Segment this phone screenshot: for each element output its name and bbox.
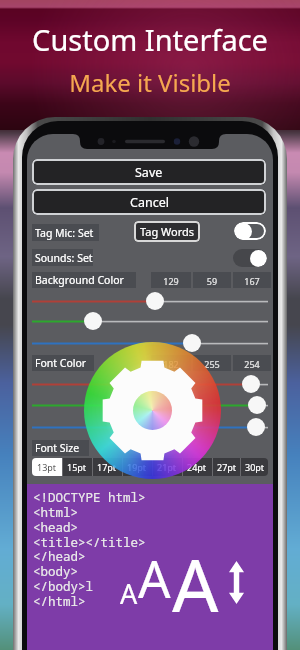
staticText: 167 [233,275,271,287]
button[interactable]: 24pt [182,458,212,476]
button[interactable]: 21pt [152,458,182,476]
staticText: Tag Mic: Set [35,226,94,240]
staticText: 59 [193,275,231,287]
staticText: Save [135,164,163,181]
button[interactable]: Slider handle [242,375,260,393]
staticText: 19pt [127,461,147,473]
staticText: 15pt [67,461,87,473]
button[interactable]: Color picker [84,342,221,479]
button[interactable]: Font Size [32,440,89,456]
staticText: 13pt [37,461,57,473]
staticText: 182 [151,358,191,370]
button[interactable]: Slider handle [247,418,265,436]
staticText: Make it Visible [0,66,300,99]
staticText: Sounds: Set [35,251,93,265]
staticText: <title></title> [33,534,146,551]
button[interactable]: 27pt [212,458,242,476]
staticText: 255 [193,358,231,370]
button[interactable]: 15pt [62,458,92,476]
staticText: A [120,575,138,612]
button[interactable]: 17pt [92,458,122,476]
staticText: Font Size [35,441,80,455]
staticText: Background Color [35,273,124,287]
button[interactable]: Slider handle [84,312,102,330]
button[interactable]: Background Color [32,272,136,288]
staticText: 254 [233,358,271,370]
button[interactable]: Tag Mic: Set [32,224,99,241]
staticText: <body> [33,563,79,580]
staticText: <head> [33,519,79,536]
staticText: Tag Words [140,224,195,239]
button[interactable]: Slider handle [146,292,164,310]
button[interactable]: 19pt [122,458,152,476]
staticText: <html> [33,504,79,521]
button[interactable]: Cancel [32,189,266,215]
staticText: Custom Interface [0,20,300,59]
staticText: 17pt [97,461,117,473]
button[interactable]: Font Color [32,355,94,371]
button[interactable]: Tag Mic toggle [234,222,266,240]
staticText: 30pt [245,461,265,473]
staticText: 24pt [187,461,207,473]
button[interactable]: Save [32,159,266,185]
staticText: A [171,534,220,612]
staticText: Font Color [35,356,87,370]
staticText: Cancel [130,194,169,211]
button[interactable]: Sounds toggle [233,249,267,267]
button[interactable]: 13pt [32,458,62,476]
staticText: <!DOCTYPE html> [33,489,146,506]
staticText: </head> [33,548,86,565]
staticText: 129 [151,275,191,287]
staticText: A [138,543,171,612]
button[interactable]: Tag Words [134,221,200,242]
staticText: 21pt [157,461,177,473]
staticText: 27pt [217,461,237,473]
button[interactable]: Slider handle [248,396,266,414]
staticText: </body>l [33,578,94,595]
button[interactable]: Slider handle [183,334,201,352]
staticText: </html> [33,593,86,610]
button[interactable]: Sounds: Set [32,249,93,266]
button[interactable]: 30pt [242,458,268,476]
